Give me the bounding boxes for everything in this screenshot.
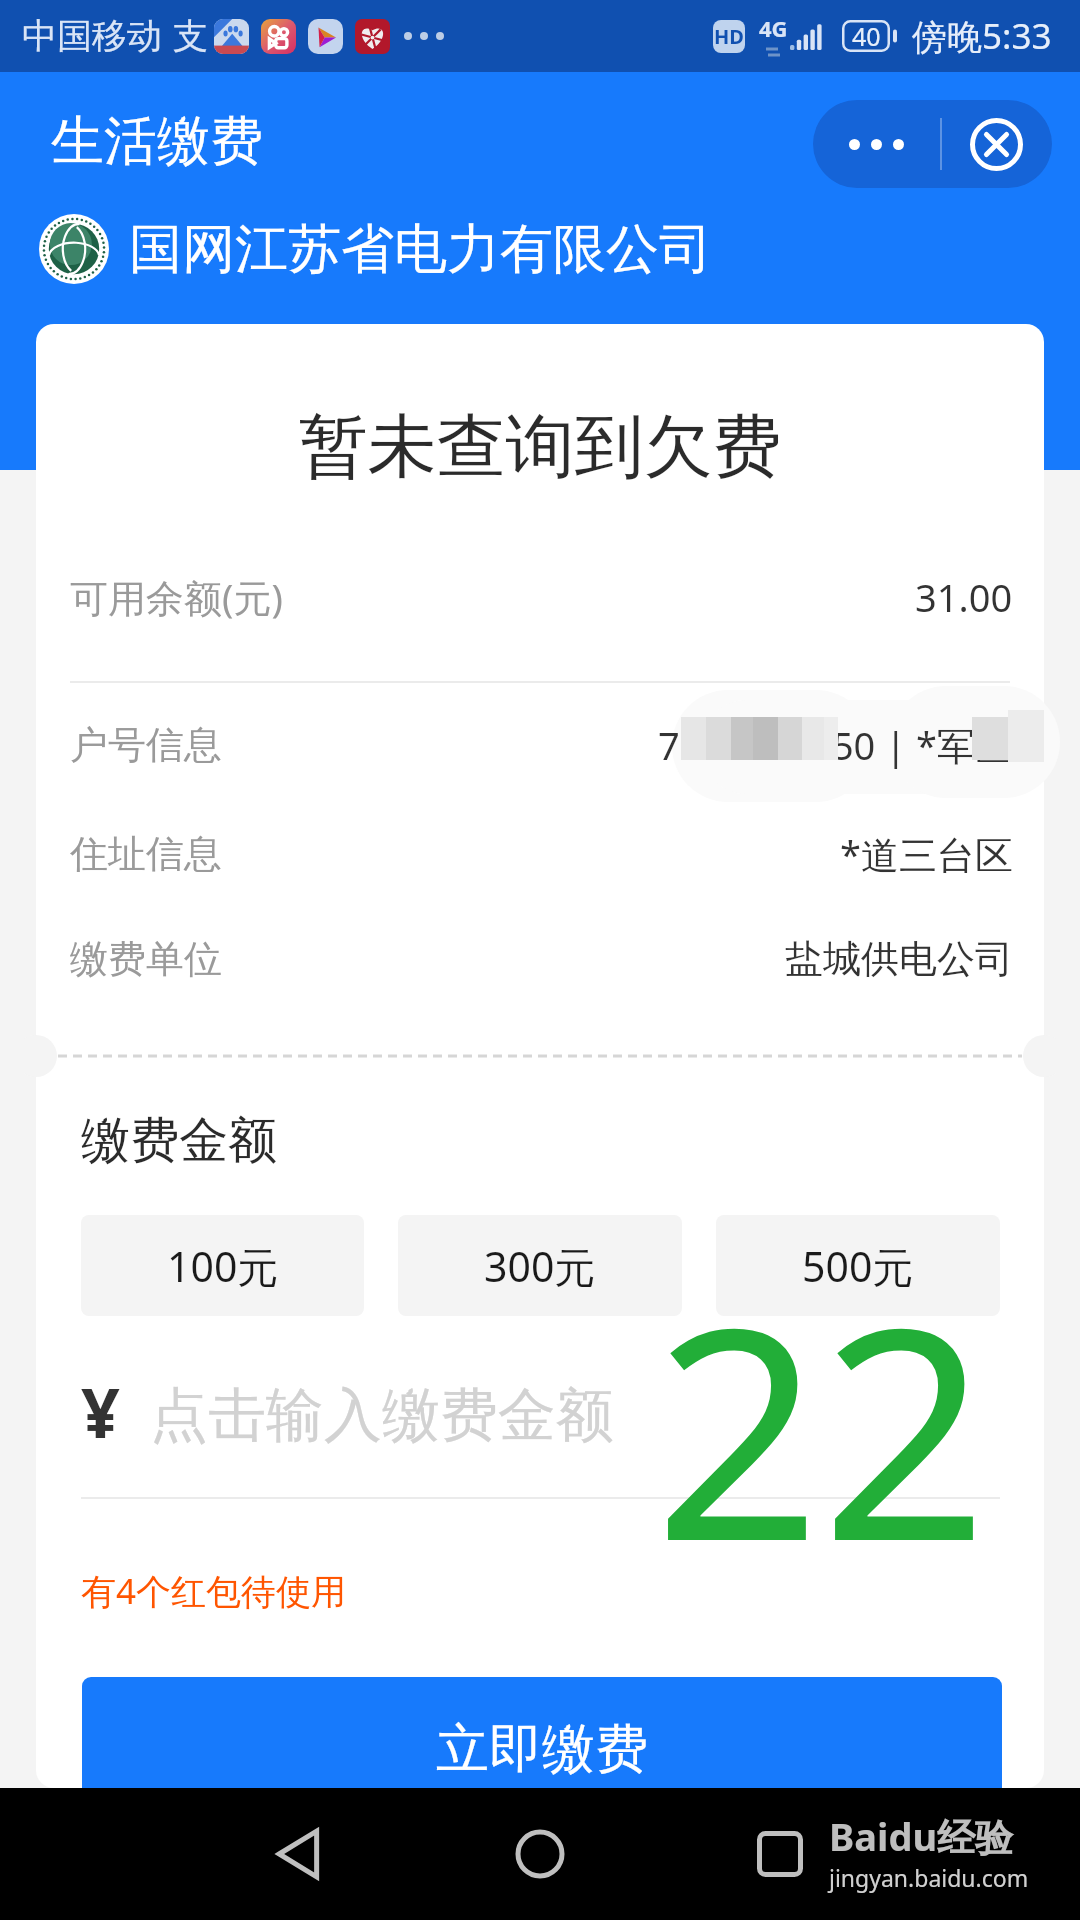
staticText: 立即缴费 — [436, 1716, 648, 1783]
button[interactable]: More options — [813, 100, 940, 188]
staticText: 户号信息 — [70, 721, 222, 769]
button[interactable]: 立即缴费 — [82, 1677, 1002, 1821]
staticText: HD — [714, 23, 744, 50]
staticText: ¥ — [81, 1365, 120, 1455]
staticText: 支 — [173, 14, 208, 58]
button[interactable]: Back — [234, 1788, 366, 1920]
button[interactable]: Recent apps — [714, 1788, 846, 1920]
staticText: 暂未查询到欠费 — [0, 404, 1080, 491]
staticText: 住址信息 — [70, 830, 222, 878]
staticText: 中国移动 — [22, 14, 162, 58]
staticText: 300元 — [484, 1238, 596, 1294]
staticText: 缴费金额 — [81, 1110, 277, 1172]
button[interactable]: Close — [942, 100, 1051, 188]
staticText: 傍晚5:33 — [912, 12, 1052, 60]
button[interactable]: 300元 — [398, 1215, 682, 1316]
staticText: 4G — [759, 13, 788, 43]
staticText: 国网江苏省电力有限公司 — [129, 216, 712, 283]
staticText: 生活缴费 — [51, 108, 263, 175]
staticText: 100元 — [167, 1238, 279, 1294]
button[interactable]: 500元 — [716, 1215, 1000, 1316]
button[interactable]: Home — [474, 1788, 606, 1920]
button[interactable]: 有4个红包待使用 — [81, 1567, 347, 1615]
staticText: 点击输入缴费金额 — [150, 1379, 614, 1452]
staticText: Baidu经验 — [829, 1810, 1014, 1862]
staticText: 盐城供电公司 — [785, 935, 1013, 983]
staticText: 22 — [654, 1228, 989, 1626]
staticText: 40 — [852, 19, 881, 53]
staticText: 可用余额(元) — [70, 571, 283, 623]
button[interactable]: ¥ — [81, 1365, 1000, 1455]
button[interactable]: 100元 — [81, 1215, 364, 1316]
staticText: *道三台区 — [840, 828, 1013, 880]
staticText: 缴费单位 — [70, 935, 222, 983]
staticText: 7008300050 | *军区 — [658, 719, 1013, 771]
staticText: 31.00 — [915, 571, 1013, 623]
staticText: jingyan.baidu.com — [829, 1862, 1029, 1893]
staticText: 500元 — [802, 1238, 914, 1294]
